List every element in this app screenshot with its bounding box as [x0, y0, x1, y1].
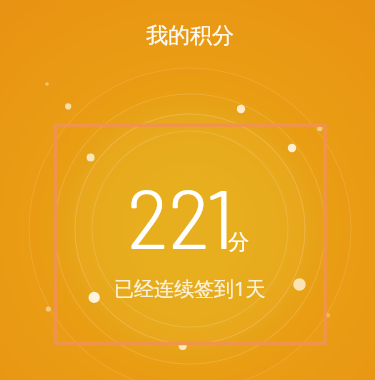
staticText: 221 — [127, 167, 234, 265]
staticText: 已经连续签到1天 — [114, 275, 266, 302]
staticText: 分 — [228, 229, 249, 255]
staticText: 我的积分 — [146, 22, 234, 50]
